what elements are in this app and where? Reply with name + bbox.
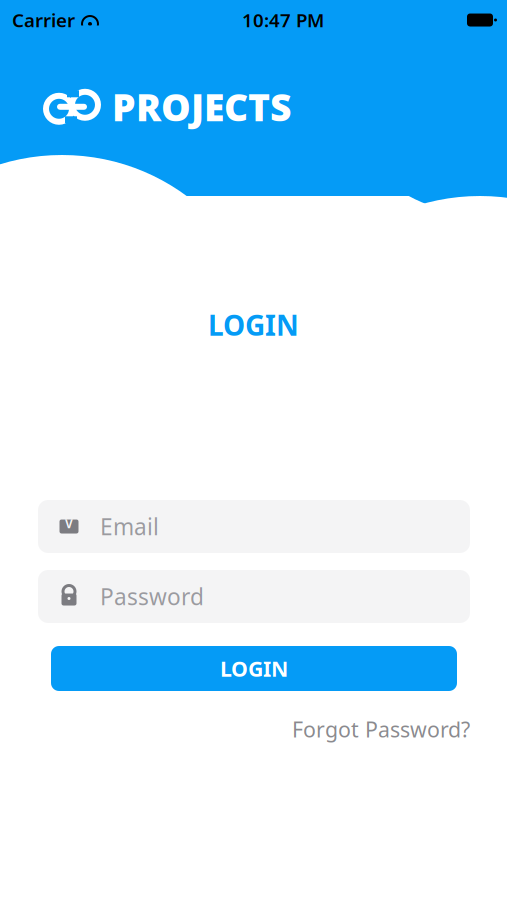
- button[interactable]: Forgot Password?: [292, 711, 470, 747]
- button[interactable]: V: [38, 500, 470, 553]
- staticText: Carrier: [12, 8, 75, 32]
- staticText: 10:47 PM: [242, 8, 324, 32]
- staticText: PROJECTS: [112, 82, 292, 132]
- staticText: Email: [100, 511, 159, 541]
- button[interactable]: LOGIN: [51, 646, 457, 691]
- staticText: LOGIN: [208, 306, 299, 344]
- staticText: Forgot Password?: [292, 715, 470, 743]
- staticText: V: [65, 515, 73, 531]
- staticText: Password: [100, 581, 204, 611]
- staticText: LOGIN: [220, 654, 288, 683]
- button[interactable]: Password: [38, 570, 470, 623]
